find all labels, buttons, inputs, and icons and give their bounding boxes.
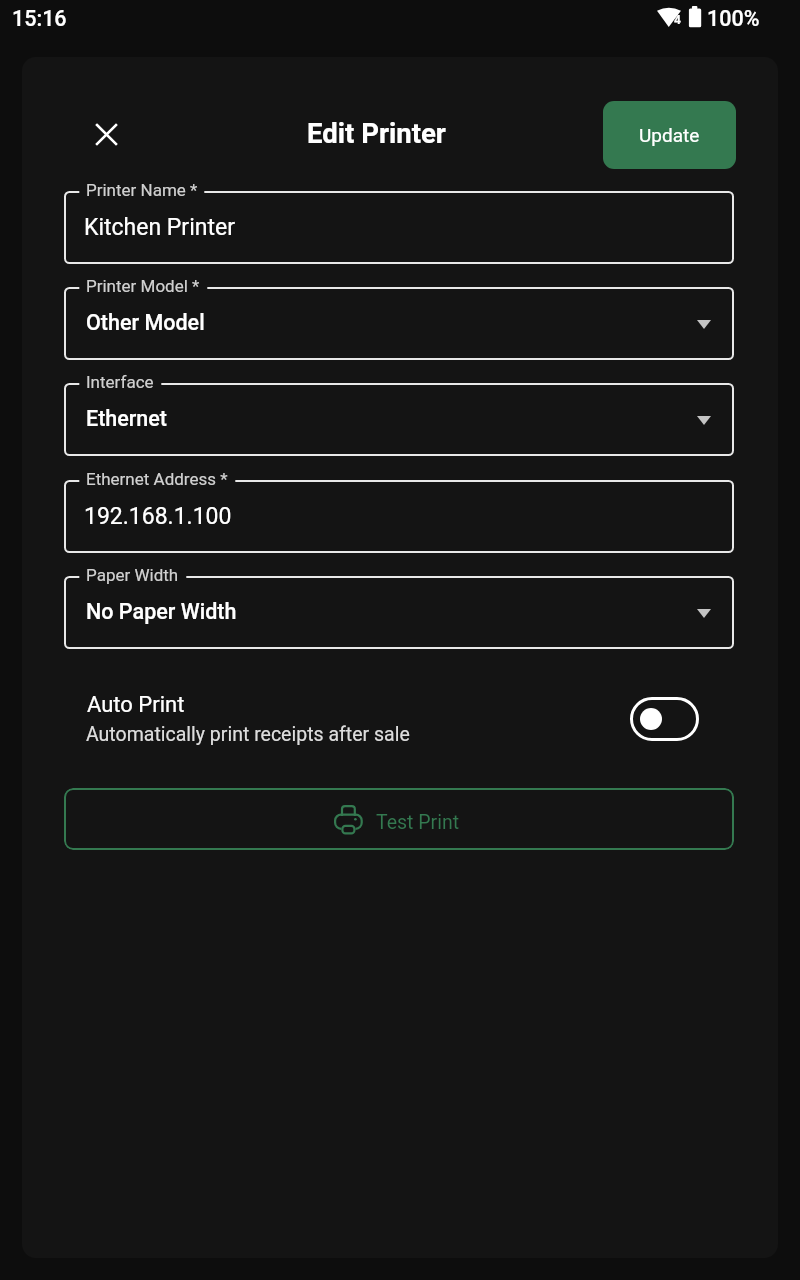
staticText: Other Model [86,310,205,335]
staticText: Printer Model * [86,276,200,296]
button[interactable]: Auto Print [64,681,734,771]
button[interactable]: Test Print [64,788,734,850]
staticText: Ethernet [86,406,168,431]
staticText: 192.168.1.100 [84,503,232,530]
staticText: Test Print [376,811,460,834]
staticText: 100% [707,6,760,31]
staticText: 4 [674,13,681,27]
staticText: Auto Print [87,692,185,718]
staticText: 15:16 [12,6,67,31]
staticText: Printer Name * [86,180,198,200]
staticText: No Paper Width [86,599,237,624]
button[interactable]: Paper Width [64,576,734,649]
staticText: Kitchen Printer [84,214,235,241]
staticText: Interface [86,372,154,392]
staticText: Paper Width [86,565,179,585]
button[interactable]: Close [82,110,130,158]
button[interactable]: Ethernet Address * [64,480,734,553]
button[interactable]: Interface [64,383,734,456]
button[interactable]: Update [603,101,736,169]
staticText: Ethernet Address * [86,469,228,489]
staticText: Automatically print receipts after sale [86,723,410,746]
staticText: Update [639,124,700,146]
staticText: Edit Printer [307,117,446,149]
button[interactable]: Printer Model * [64,287,734,360]
button[interactable]: Printer Name * [64,191,734,264]
